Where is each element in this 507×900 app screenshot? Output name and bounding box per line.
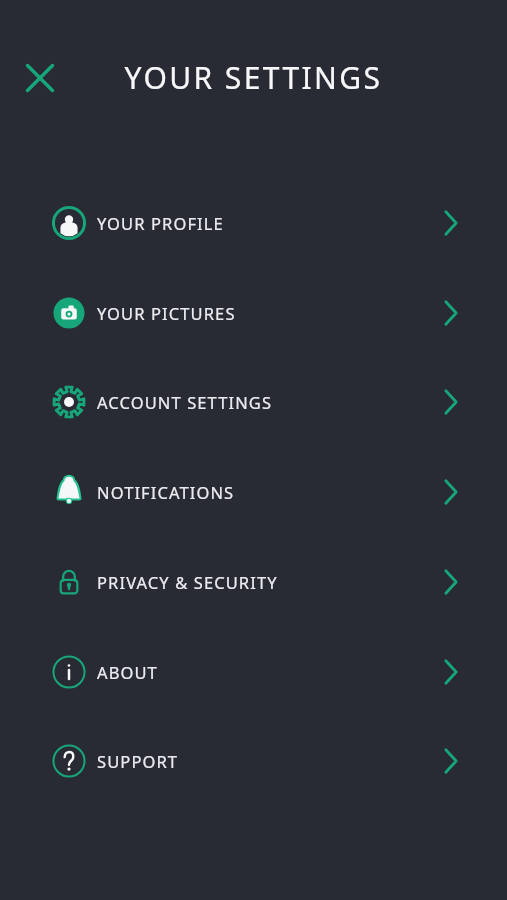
button[interactable]: YOUR PROFILE <box>0 185 507 261</box>
staticText: SUPPORT <box>97 750 473 772</box>
button[interactable]: SUPPORT <box>0 723 507 799</box>
button[interactable]: ACCOUNT SETTINGS <box>0 364 507 440</box>
button[interactable]: Close <box>16 54 64 102</box>
button[interactable]: NOTIFICATIONS <box>0 454 507 530</box>
button[interactable]: YOUR PICTURES <box>0 275 507 351</box>
staticText: ACCOUNT SETTINGS <box>97 391 473 413</box>
button[interactable]: ABOUT <box>0 634 507 710</box>
staticText: YOUR SETTINGS <box>0 57 507 98</box>
staticText: ABOUT <box>97 661 473 683</box>
staticText: NOTIFICATIONS <box>97 481 473 503</box>
staticText: PRIVACY & SECURITY <box>97 571 473 593</box>
staticText: YOUR PROFILE <box>97 212 473 234</box>
button[interactable]: PRIVACY & SECURITY <box>0 544 507 620</box>
staticText: YOUR PICTURES <box>97 302 473 324</box>
